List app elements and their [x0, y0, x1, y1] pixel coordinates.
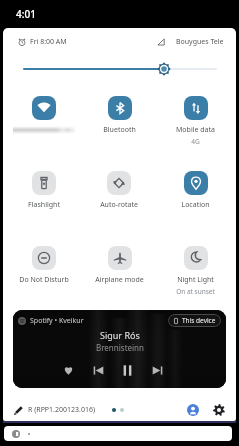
staticText: R (RPP1.200123.016)	[28, 405, 95, 415]
staticText: Fri 8:00 AM	[30, 37, 67, 47]
staticText: Night Light	[177, 275, 214, 285]
button[interactable]: Bluetooth	[83, 92, 155, 156]
button[interactable]: Previous	[88, 360, 108, 380]
button[interactable]: Airplane mode	[83, 242, 155, 306]
staticText: Flashlight	[28, 200, 60, 210]
button[interactable]: Account	[185, 402, 201, 418]
staticText: Mobile data	[176, 125, 215, 135]
staticText: Auto-rotate	[100, 200, 138, 210]
staticText: Location	[181, 200, 210, 210]
button[interactable]: This device	[173, 314, 216, 327]
staticText: On at sunset	[176, 287, 215, 296]
staticText: This device	[182, 316, 216, 325]
button[interactable]: Location	[159, 167, 231, 231]
button[interactable]: Night Light	[159, 242, 231, 306]
staticText: Brennisteinn	[96, 342, 144, 353]
button[interactable]: Pause	[117, 360, 137, 380]
button[interactable]: Flashlight	[8, 167, 80, 231]
staticText: Bluetooth	[103, 125, 136, 135]
button[interactable]: Spotify • Kveikur	[13, 310, 226, 388]
button[interactable]: Do Not Disturb	[8, 242, 80, 306]
staticText: Airplane mode	[95, 275, 144, 285]
staticText: Do Not Disturb	[19, 275, 69, 285]
button[interactable]	[4, 426, 232, 441]
staticText: Bouygues Tele	[176, 37, 224, 47]
staticText: Sigur Rós	[100, 329, 140, 341]
button[interactable]	[8, 92, 80, 156]
button[interactable]: Mobile data	[159, 92, 231, 156]
button[interactable]: Settings	[211, 402, 227, 418]
button[interactable]: Next	[147, 360, 167, 380]
button[interactable]: Auto-rotate	[83, 167, 155, 231]
button[interactable]: Favorite	[58, 360, 78, 380]
button[interactable]: Edit	[10, 402, 26, 418]
staticText: 4:01	[16, 7, 36, 21]
staticText: 4G	[191, 137, 200, 146]
staticText: Spotify • Kveikur	[30, 316, 84, 326]
